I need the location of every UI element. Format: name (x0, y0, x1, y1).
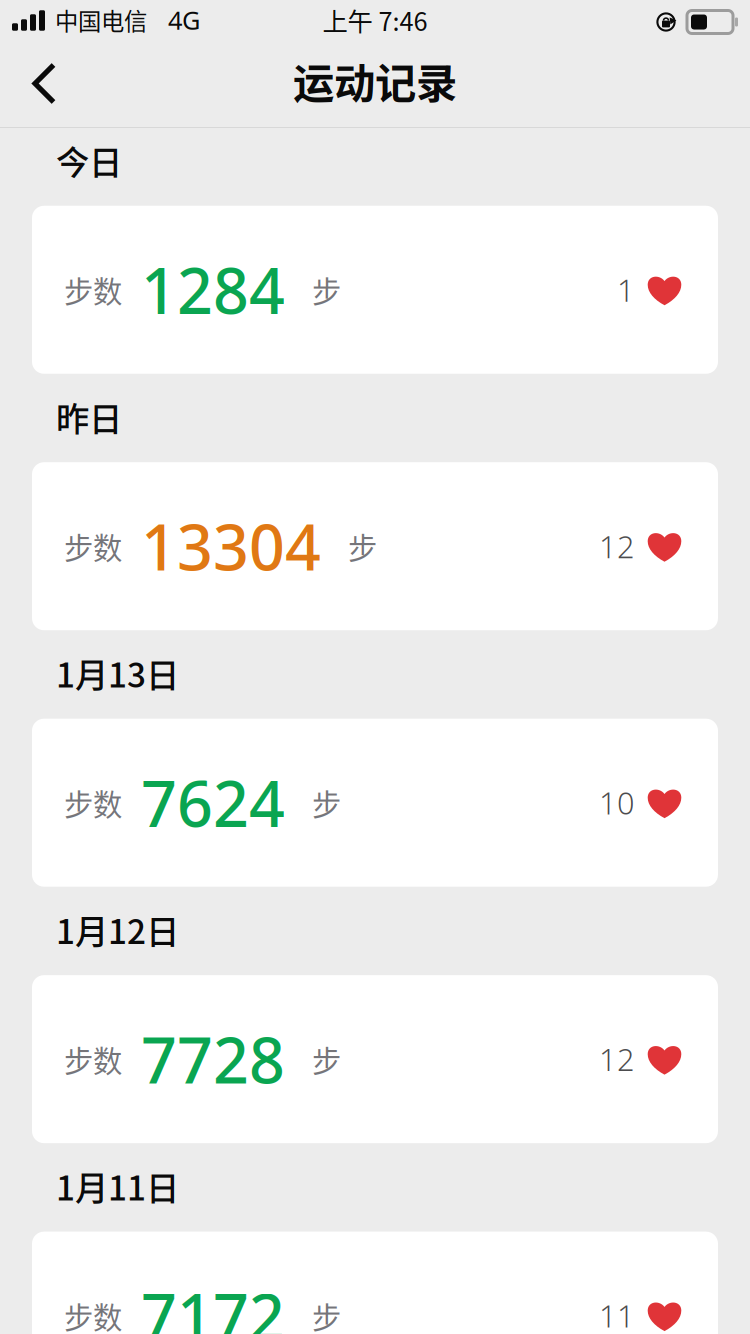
staticText: 步数 (64, 268, 122, 311)
staticText: 1284 (141, 248, 285, 331)
staticText: 上午 7:46 (322, 2, 427, 38)
button[interactable]: 步数 (32, 462, 718, 630)
staticText: 中国电信 (55, 3, 147, 37)
staticText: 11 (599, 1295, 635, 1334)
staticText: 1月12日 (56, 905, 179, 954)
staticText: 步 (312, 1294, 341, 1334)
staticText: 步数 (64, 1038, 122, 1080)
button[interactable]: 步数 (32, 975, 718, 1143)
staticText: 1月11日 (56, 1162, 179, 1210)
staticText: 1 (617, 269, 635, 310)
staticText: 运动记录 (293, 51, 457, 110)
button[interactable]: 返回 (12, 50, 76, 116)
staticText: 步 (348, 525, 377, 567)
staticText: 步数 (64, 781, 122, 824)
staticText: 12 (599, 1039, 635, 1079)
staticText: 7624 (141, 761, 285, 844)
staticText: 13304 (141, 505, 321, 588)
button[interactable]: 步数 (32, 206, 718, 374)
staticText: 步 (312, 1038, 341, 1080)
staticText: 今日 (56, 136, 122, 184)
button[interactable]: 步数 (32, 1232, 718, 1334)
staticText: 昨日 (56, 392, 122, 441)
staticText: 步数 (64, 525, 122, 567)
staticText: 步数 (64, 1294, 122, 1334)
staticText: 7172 (141, 1274, 285, 1334)
staticText: 10 (599, 782, 635, 823)
staticText: 4G (168, 3, 200, 37)
staticText: 1月13日 (56, 649, 179, 697)
staticText: 步 (312, 268, 341, 311)
staticText: 12 (599, 526, 635, 567)
button[interactable]: 步数 (32, 719, 718, 887)
staticText: 7728 (141, 1018, 285, 1101)
staticText: 步 (312, 781, 341, 824)
